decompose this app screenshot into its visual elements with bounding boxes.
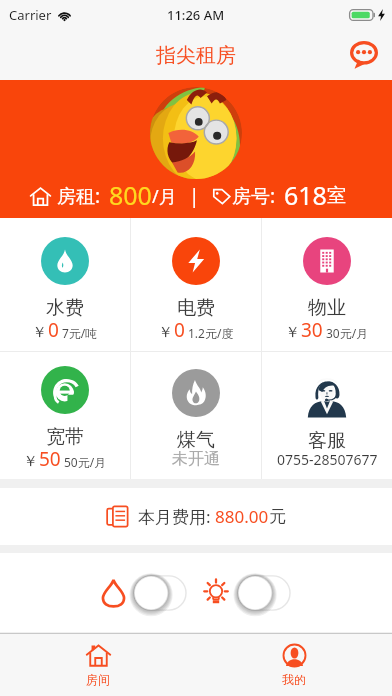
staticText: 我的: [282, 672, 306, 687]
staticText: ￥: [23, 452, 38, 471]
staticText: 电费: [177, 296, 215, 320]
staticText: ￥: [32, 323, 47, 342]
staticText: 30元/月: [326, 325, 369, 341]
staticText: 1.2元/度: [188, 325, 234, 341]
staticText: 房租:: [57, 183, 101, 209]
button[interactable]: 客服: [262, 352, 392, 479]
staticText: 指尖租房: [156, 43, 236, 68]
staticText: 未开通: [172, 449, 220, 469]
staticText: 煤气: [177, 428, 215, 452]
staticText: Carrier: [9, 6, 52, 24]
button[interactable]: Messages: [345, 36, 383, 74]
button[interactable]: Toggle: [133, 574, 187, 612]
button[interactable]: 水费: [0, 218, 130, 351]
staticText: ￥: [158, 323, 173, 342]
staticText: 客服: [308, 429, 346, 453]
staticText: 0: [174, 317, 185, 343]
staticText: 800: [109, 178, 152, 212]
staticText: 宽带: [46, 425, 84, 449]
staticText: 30: [301, 317, 323, 343]
staticText: /月: [152, 184, 177, 209]
staticText: 本月费用:: [138, 505, 215, 528]
button[interactable]: Avatar: [150, 87, 242, 179]
staticText: 50: [39, 446, 61, 472]
staticText: 房号:: [232, 183, 276, 209]
button[interactable]: 宽带: [0, 352, 130, 479]
staticText: 物业: [308, 296, 346, 320]
staticText: 880.00: [215, 505, 269, 528]
staticText: 0755-28507677: [277, 450, 378, 469]
staticText: 室: [327, 184, 346, 208]
staticText: 50元/月: [64, 454, 107, 470]
staticText: 元: [269, 506, 286, 527]
staticText: 618: [284, 178, 327, 212]
button[interactable]: 煤气: [131, 352, 261, 479]
button[interactable]: 我的: [196, 634, 392, 696]
button[interactable]: 房间: [0, 634, 196, 696]
staticText: |: [189, 183, 200, 209]
staticText: 房间: [86, 672, 110, 687]
staticText: 7元/吨: [62, 325, 98, 341]
staticText: 11:26 AM: [167, 6, 225, 24]
staticText: 水费: [46, 296, 84, 320]
button[interactable]: Toggle: [237, 574, 291, 612]
button[interactable]: 本月费用:: [0, 488, 392, 545]
button[interactable]: 电费: [131, 218, 261, 351]
staticText: 0: [48, 317, 59, 343]
staticText: ￥: [285, 323, 300, 342]
button[interactable]: 物业: [262, 218, 392, 351]
